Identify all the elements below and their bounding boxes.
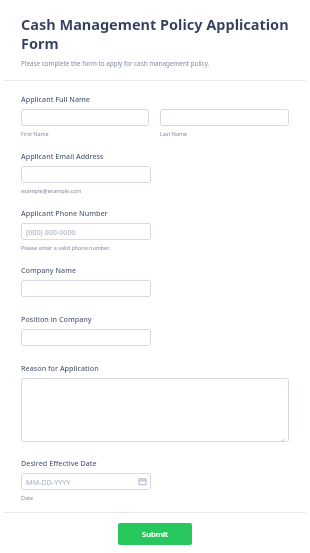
- staticText: Applicant Full Name: [21, 94, 90, 104]
- button[interactable]: [160, 109, 289, 126]
- staticText: example@example.com: [21, 187, 82, 194]
- button[interactable]: [21, 166, 151, 183]
- staticText: Last Name: [160, 130, 187, 137]
- button[interactable]: [21, 378, 289, 442]
- button[interactable]: [21, 329, 151, 346]
- staticText: Date: [21, 494, 33, 501]
- staticText: Reason for Application: [21, 363, 99, 373]
- button[interactable]: MM-DD-YYYY: [21, 473, 151, 490]
- button[interactable]: (000) 000-0000: [21, 223, 151, 240]
- staticText: Desired Effective Date: [21, 458, 97, 468]
- button[interactable]: [21, 280, 151, 297]
- staticText: Position in Company: [21, 314, 92, 324]
- button[interactable]: Submit: [118, 523, 192, 545]
- staticText: Please complete the form to apply for ca…: [21, 59, 210, 68]
- button[interactable]: [21, 109, 149, 126]
- staticText: Submit: [142, 529, 168, 539]
- staticText: Company Name: [21, 265, 77, 275]
- staticText: First Name: [21, 130, 49, 137]
- staticText: Please enter a valid phone number.: [21, 244, 110, 251]
- staticText: Cash Management Policy Application Form: [21, 14, 289, 53]
- staticText: Applicant Phone Number: [21, 208, 108, 218]
- staticText: Applicant Email Address: [21, 151, 104, 161]
- staticText: MM-DD-YYYY: [26, 477, 71, 487]
- staticText: (000) 000-0000: [26, 227, 76, 237]
